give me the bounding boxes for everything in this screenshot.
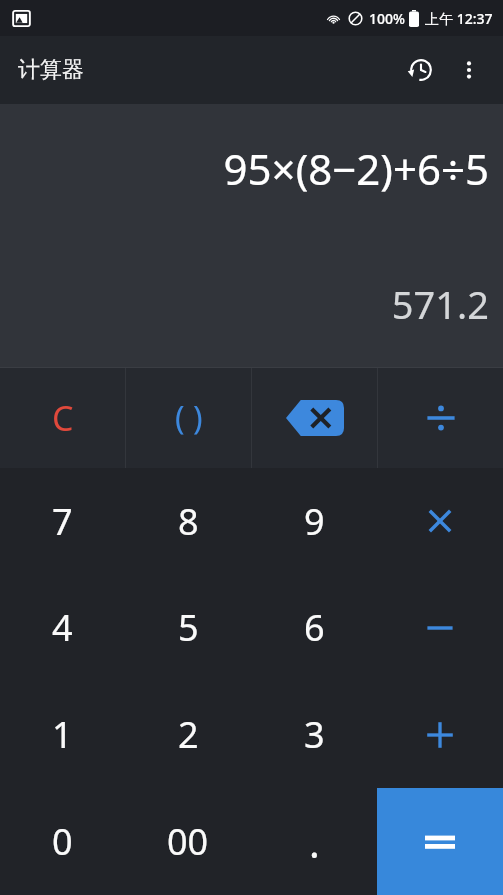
staticText: C	[52, 395, 74, 441]
button[interactable]: History	[397, 46, 445, 94]
button[interactable]: 3	[251, 681, 377, 788]
button[interactable]: More options	[445, 46, 493, 94]
button[interactable]: 2	[125, 681, 251, 788]
button[interactable]: 5	[125, 574, 251, 681]
staticText: 计算器	[18, 56, 84, 84]
staticText: 7	[52, 497, 73, 546]
button[interactable]: Parentheses	[126, 368, 251, 468]
button[interactable]: 6	[251, 574, 377, 681]
button[interactable]: 0	[0, 788, 125, 895]
button[interactable]: .	[251, 788, 377, 895]
staticText: 9	[304, 497, 325, 546]
staticText: 4	[52, 603, 73, 652]
staticText: 1	[52, 710, 73, 759]
button[interactable]: 7	[0, 468, 125, 574]
staticText: 3	[304, 710, 325, 759]
button[interactable]: 4	[0, 574, 125, 681]
button[interactable]: Clear	[0, 368, 125, 468]
button[interactable]: Minus	[377, 574, 503, 681]
staticText: .	[309, 815, 320, 869]
staticText: 8	[178, 497, 199, 546]
button[interactable]: Equals	[377, 788, 503, 895]
staticText: 95×(8−2)+6÷5	[223, 140, 489, 197]
staticText: 5	[178, 603, 199, 652]
staticText: ( )	[175, 396, 203, 440]
staticText: 00	[167, 817, 209, 866]
staticText: 571.2	[391, 278, 489, 330]
staticText: 上午 12:37	[425, 9, 493, 28]
button[interactable]: 1	[0, 681, 125, 788]
button[interactable]: 9	[251, 468, 377, 574]
button[interactable]: Plus	[377, 681, 503, 788]
button[interactable]: 00	[125, 788, 251, 895]
button[interactable]: Backspace	[252, 368, 377, 468]
staticText: 0	[52, 817, 73, 866]
staticText: 100%	[369, 9, 405, 28]
button[interactable]: 8	[125, 468, 251, 574]
staticText: 2	[178, 710, 199, 759]
button[interactable]: Multiply	[377, 468, 503, 574]
button[interactable]: Divide	[378, 368, 503, 468]
staticText: 6	[304, 603, 325, 652]
